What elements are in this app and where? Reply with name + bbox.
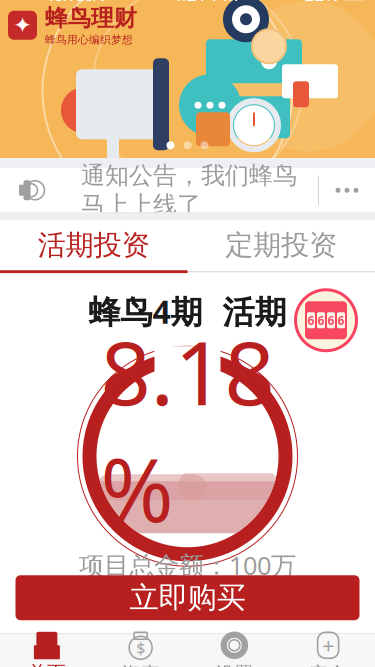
staticText: 蜂鸟用心编织梦想 bbox=[45, 33, 133, 46]
staticText: 项目总金额：100万 bbox=[79, 548, 296, 582]
button[interactable]: 首页 bbox=[0, 634, 94, 667]
staticText: 6 bbox=[317, 312, 324, 328]
staticText: 6 bbox=[307, 312, 314, 328]
staticText: 定期投资 bbox=[225, 228, 337, 262]
staticText: 6 bbox=[337, 312, 344, 328]
staticText: 设置 bbox=[215, 662, 253, 667]
staticText: VIRGIN bbox=[46, 0, 105, 6]
button[interactable]: $ bbox=[94, 634, 188, 667]
staticText: 蜂鸟理财 bbox=[45, 4, 137, 32]
staticText: 资产 bbox=[122, 662, 160, 667]
staticText: ✶ bbox=[288, 0, 300, 3]
button[interactable]: 通知公告，我们蜂鸟马上上线了 bbox=[60, 168, 318, 212]
button[interactable]: 定期投资 bbox=[187, 220, 375, 270]
button[interactable]: 抽奖活动 bbox=[293, 287, 359, 353]
button[interactable]: 更多 bbox=[319, 168, 375, 212]
button[interactable]: 设置 bbox=[187, 634, 281, 667]
staticText: 4:21 PM bbox=[172, 0, 239, 6]
staticText: 首页 bbox=[28, 661, 66, 667]
staticText: 通知公告，我们蜂鸟马上上线了 bbox=[81, 161, 297, 220]
button[interactable]: 立即购买 bbox=[15, 575, 359, 620]
button[interactable]: 公告 bbox=[0, 168, 60, 212]
staticText: 蜂鸟4期 活期 bbox=[88, 290, 286, 332]
staticText: 6 bbox=[327, 312, 334, 328]
staticText: + bbox=[322, 631, 334, 659]
staticText: $ bbox=[136, 637, 145, 658]
button[interactable]: 活期投资 bbox=[0, 220, 187, 270]
staticText: ✦ bbox=[13, 12, 32, 38]
staticText: 安全 bbox=[309, 662, 347, 667]
button[interactable]: + bbox=[281, 634, 375, 667]
staticText: 22% bbox=[304, 0, 338, 6]
staticText: 立即购买 bbox=[129, 580, 245, 616]
staticText: 8.18% bbox=[100, 313, 274, 546]
staticText: 活期投资 bbox=[38, 228, 150, 262]
